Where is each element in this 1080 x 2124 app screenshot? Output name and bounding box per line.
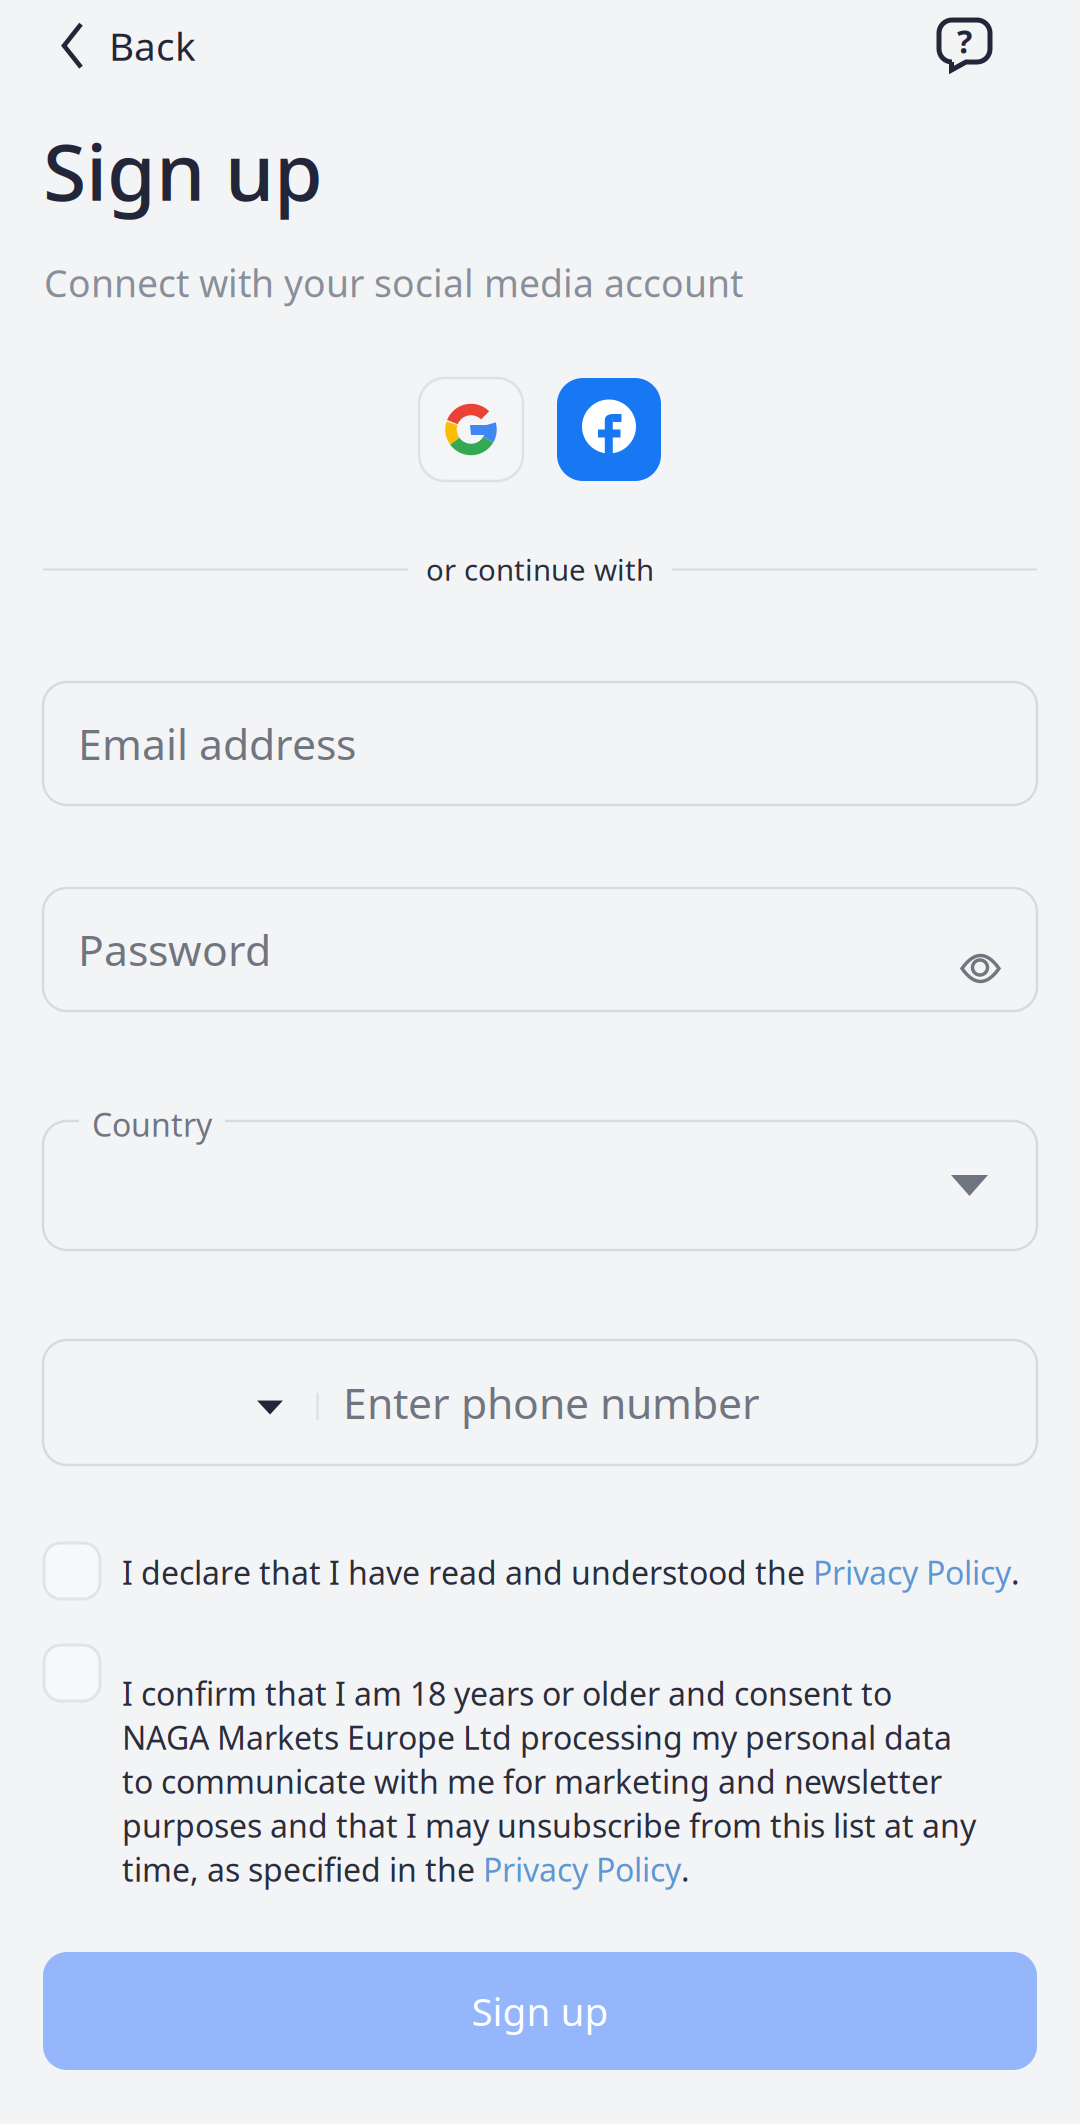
staticText: NAGA Markets Europe Ltd processing my pe… <box>122 1716 952 1758</box>
staticText: Country <box>92 1103 212 1145</box>
staticText: Connect with your social media account <box>44 258 743 308</box>
staticText: Sign up <box>43 118 323 222</box>
button[interactable]: I declare that I have read and understoo… <box>44 1543 1020 1599</box>
button[interactable]: Show password <box>960 931 1037 967</box>
button[interactable]: Help <box>922 3 1007 87</box>
staticText: or continue with <box>426 550 654 589</box>
button[interactable]: I confirm that I am 18 years or older an… <box>44 1645 976 1890</box>
button[interactable]: Continue with Facebook <box>557 378 661 481</box>
button[interactable]: Continue with Google <box>419 378 523 481</box>
staticText: I declare that I have read and understoo… <box>122 1551 813 1593</box>
staticText: Enter phone number <box>343 1374 760 1431</box>
staticText: Back <box>109 20 196 71</box>
staticText: Email address <box>78 715 356 772</box>
staticText: to communicate with me for marketing and… <box>122 1760 942 1802</box>
staticText: Privacy Policy <box>483 1848 681 1890</box>
staticText: Sign up <box>471 1985 608 2037</box>
staticText: Password <box>78 921 271 978</box>
staticText: time, as specified in the <box>122 1848 483 1890</box>
staticText: I confirm that I am 18 years or older an… <box>122 1672 892 1714</box>
staticText: . <box>1011 1551 1020 1593</box>
button[interactable]: Back <box>47 6 210 85</box>
staticText: purposes and that I may unsubscribe from… <box>122 1804 976 1846</box>
staticText: Privacy Policy <box>813 1551 1011 1593</box>
staticText: . <box>681 1848 690 1890</box>
button[interactable]: Sign up <box>43 1952 1037 2070</box>
staticText: ? <box>957 20 972 62</box>
